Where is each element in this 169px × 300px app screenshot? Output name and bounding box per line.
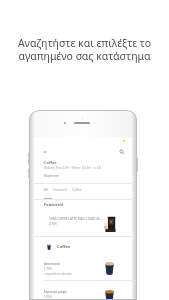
staticText: Αναζητήστε και επιλέξτε το αγαπημένο σας… xyxy=(8,36,161,63)
staticText: 1.70 € xyxy=(44,267,52,271)
button[interactable]: All xyxy=(44,188,48,192)
staticText: Featured xyxy=(44,202,63,208)
staticText: + ingredients selection xyxy=(44,272,72,276)
staticText: Americano xyxy=(44,262,60,266)
staticText: Coffee xyxy=(44,160,57,165)
staticText: 2.70 € xyxy=(49,222,57,226)
button[interactable]: Coffee xyxy=(72,188,82,192)
staticText: Espresso μικρό xyxy=(44,290,67,294)
button[interactable]: Back xyxy=(42,149,48,155)
staticText: SUM COFFEE LATTE MACCHIATO 40... xyxy=(49,217,103,221)
staticText: Delivery Free 3.0 € · 10min · 0.5 km · ★… xyxy=(44,166,101,170)
staticText: Coffee xyxy=(57,244,71,250)
button[interactable]: Read more xyxy=(44,174,59,178)
button[interactable]: Featured xyxy=(53,188,67,192)
staticText: 1.50 € xyxy=(44,295,52,299)
button[interactable]: Search xyxy=(119,149,125,155)
